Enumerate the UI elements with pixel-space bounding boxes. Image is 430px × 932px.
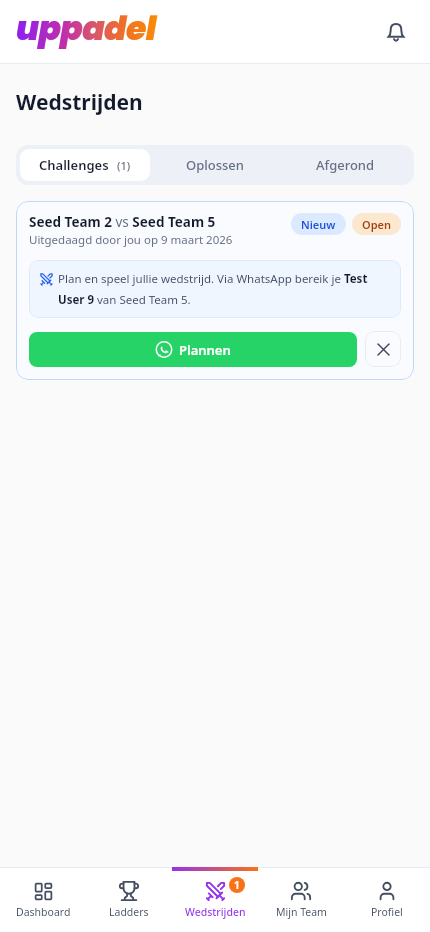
staticText: Profiel bbox=[371, 905, 403, 919]
button[interactable]: Notifications bbox=[376, 12, 416, 52]
button[interactable]: Ladders bbox=[86, 867, 172, 932]
staticText: Oplossen bbox=[186, 156, 244, 174]
button[interactable]: Mijn Team bbox=[258, 867, 344, 932]
staticText: Wedstrijden bbox=[185, 905, 246, 919]
button[interactable]: Plannen bbox=[29, 332, 357, 367]
staticText: Ladders bbox=[109, 905, 149, 919]
staticText: Dashboard bbox=[16, 905, 71, 919]
staticText: Challenges bbox=[39, 156, 109, 174]
button[interactable]: Challenges bbox=[20, 149, 150, 181]
staticText: Nieuw bbox=[301, 217, 336, 232]
staticText: Mijn Team bbox=[276, 905, 327, 919]
staticText: Open bbox=[362, 217, 391, 232]
staticText: Afgerond bbox=[316, 156, 375, 174]
staticText: Plannen bbox=[179, 341, 231, 359]
button[interactable]: Profiel bbox=[344, 867, 430, 932]
staticText: Wedstrijden bbox=[16, 88, 143, 117]
staticText: 1 bbox=[234, 878, 240, 892]
button[interactable]: Oplossen bbox=[150, 149, 280, 181]
button[interactable]: 1 bbox=[172, 867, 258, 932]
staticText: Seed Team 2 vs Seed Team 5 bbox=[29, 213, 216, 231]
button[interactable]: Dismiss bbox=[365, 331, 401, 367]
button[interactable]: Afgerond bbox=[280, 149, 410, 181]
staticText: uppadel bbox=[16, 5, 156, 51]
staticText: Plan en speel jullie wedstrijd. Via What… bbox=[58, 271, 390, 307]
staticText: (1) bbox=[117, 158, 131, 173]
button[interactable]: Dashboard bbox=[0, 867, 86, 932]
staticText: Uitgedaagd door jou op 9 maart 2026 bbox=[29, 232, 233, 248]
